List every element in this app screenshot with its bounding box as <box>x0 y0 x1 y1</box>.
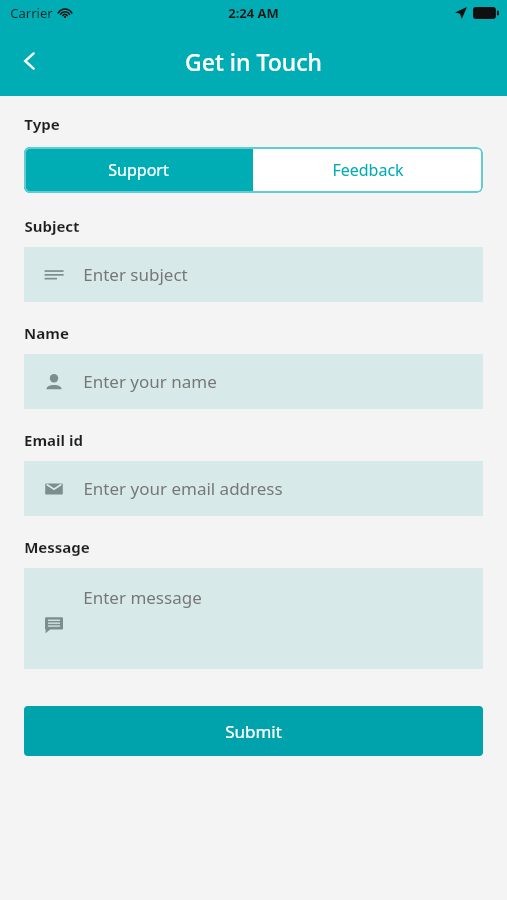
button[interactable]: Support <box>24 147 253 193</box>
staticText: Submit <box>225 720 282 743</box>
staticText: Enter subject <box>83 263 188 286</box>
button[interactable]: Submit <box>24 706 483 756</box>
button[interactable]: Enter your name <box>24 354 483 409</box>
staticText: Name <box>24 323 69 343</box>
staticText: Type <box>24 114 60 134</box>
staticText: Get in Touch <box>185 46 322 77</box>
staticText: Subject <box>24 216 80 236</box>
staticText: Carrier <box>10 4 53 22</box>
staticText: Feedback <box>332 159 404 181</box>
staticText: Enter your name <box>83 370 217 393</box>
staticText: Enter your email address <box>83 477 283 500</box>
button[interactable]: Enter your email address <box>24 461 483 516</box>
staticText: Message <box>24 537 90 557</box>
button[interactable]: Back <box>6 37 54 85</box>
staticText: Email id <box>24 430 83 450</box>
button[interactable]: Enter message <box>24 568 483 669</box>
staticText: Enter message <box>83 586 202 609</box>
button[interactable]: Enter subject <box>24 247 483 302</box>
staticText: 2:24 AM <box>228 4 279 22</box>
button[interactable]: Feedback <box>253 147 483 193</box>
staticText: Support <box>108 159 169 181</box>
